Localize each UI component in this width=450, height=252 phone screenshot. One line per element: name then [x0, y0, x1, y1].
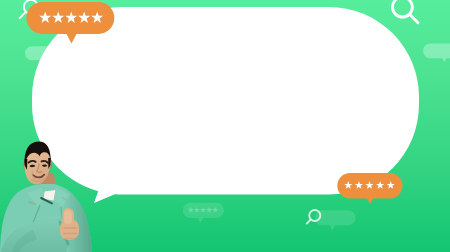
- button[interactable]: [0, 0, 450, 252]
